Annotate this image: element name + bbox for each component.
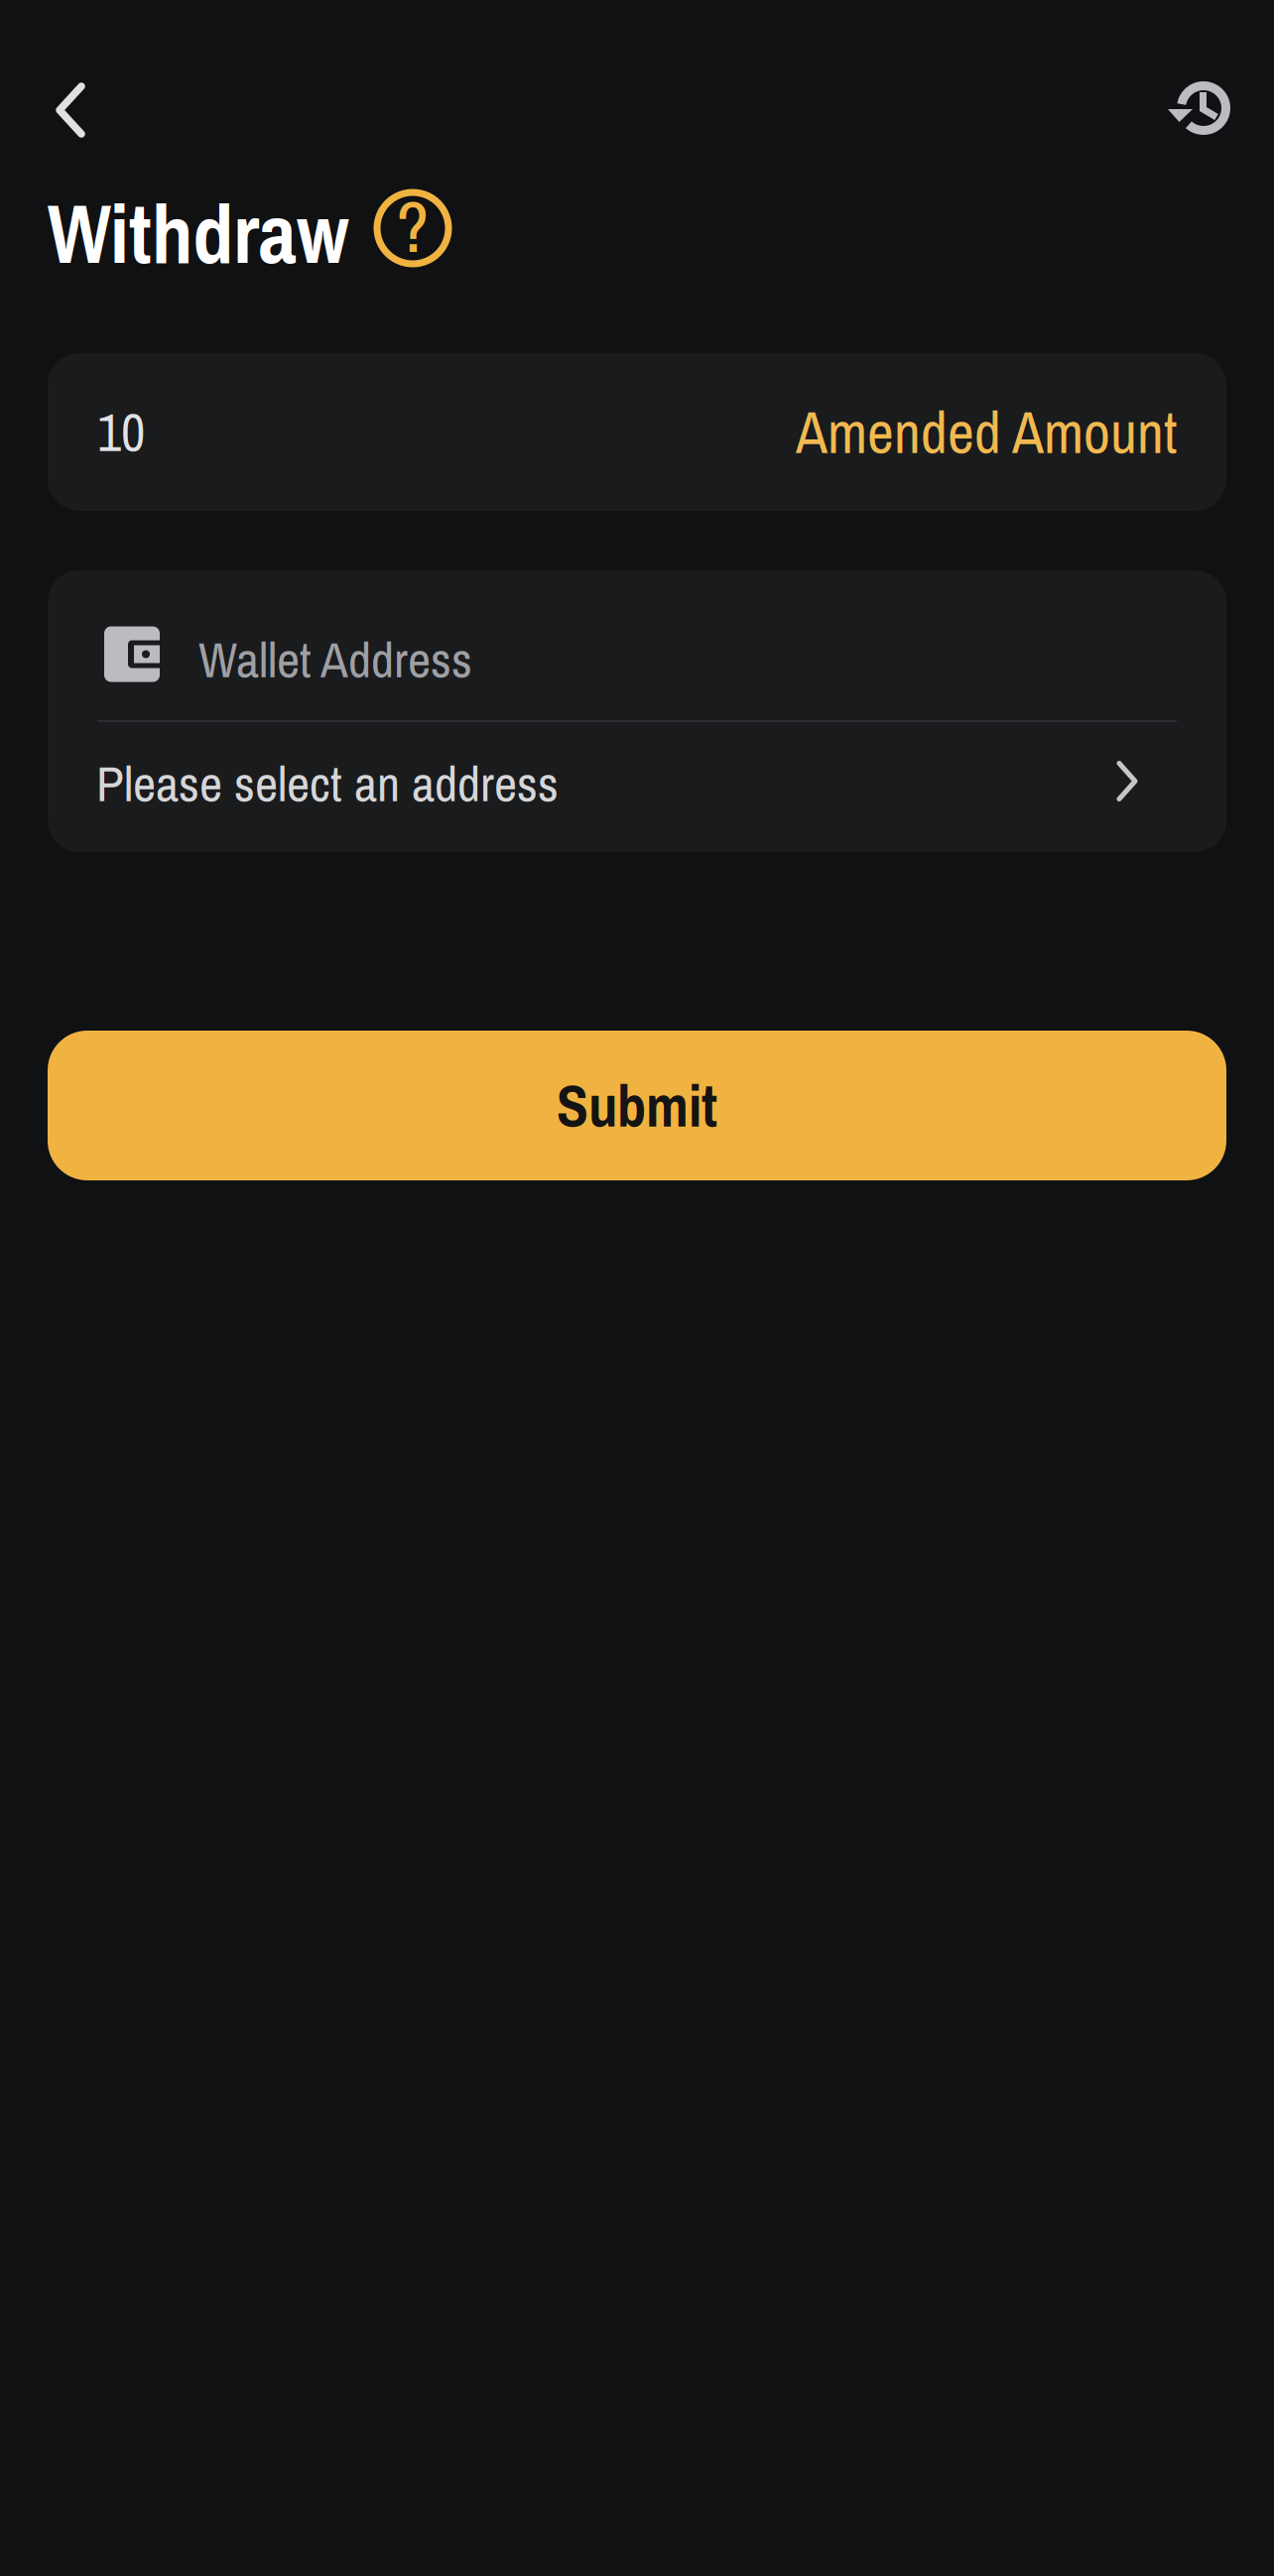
staticText: Wallet Address — [198, 625, 472, 693]
staticText: Amended Amount — [796, 393, 1177, 471]
button[interactable]: Help — [375, 198, 450, 274]
staticText: ? — [396, 178, 429, 274]
button[interactable]: Please select an address — [48, 722, 1226, 852]
staticText: Please select an address — [96, 749, 559, 817]
button[interactable]: Back — [0, 36, 116, 143]
button[interactable]: Amended Amount — [796, 393, 1177, 471]
staticText: Withdraw — [48, 178, 349, 288]
staticText: 10 — [97, 396, 145, 468]
button[interactable]: Transaction history — [1137, 36, 1274, 143]
staticText: Submit — [557, 1066, 717, 1145]
button[interactable]: Submit — [48, 1031, 1226, 1180]
